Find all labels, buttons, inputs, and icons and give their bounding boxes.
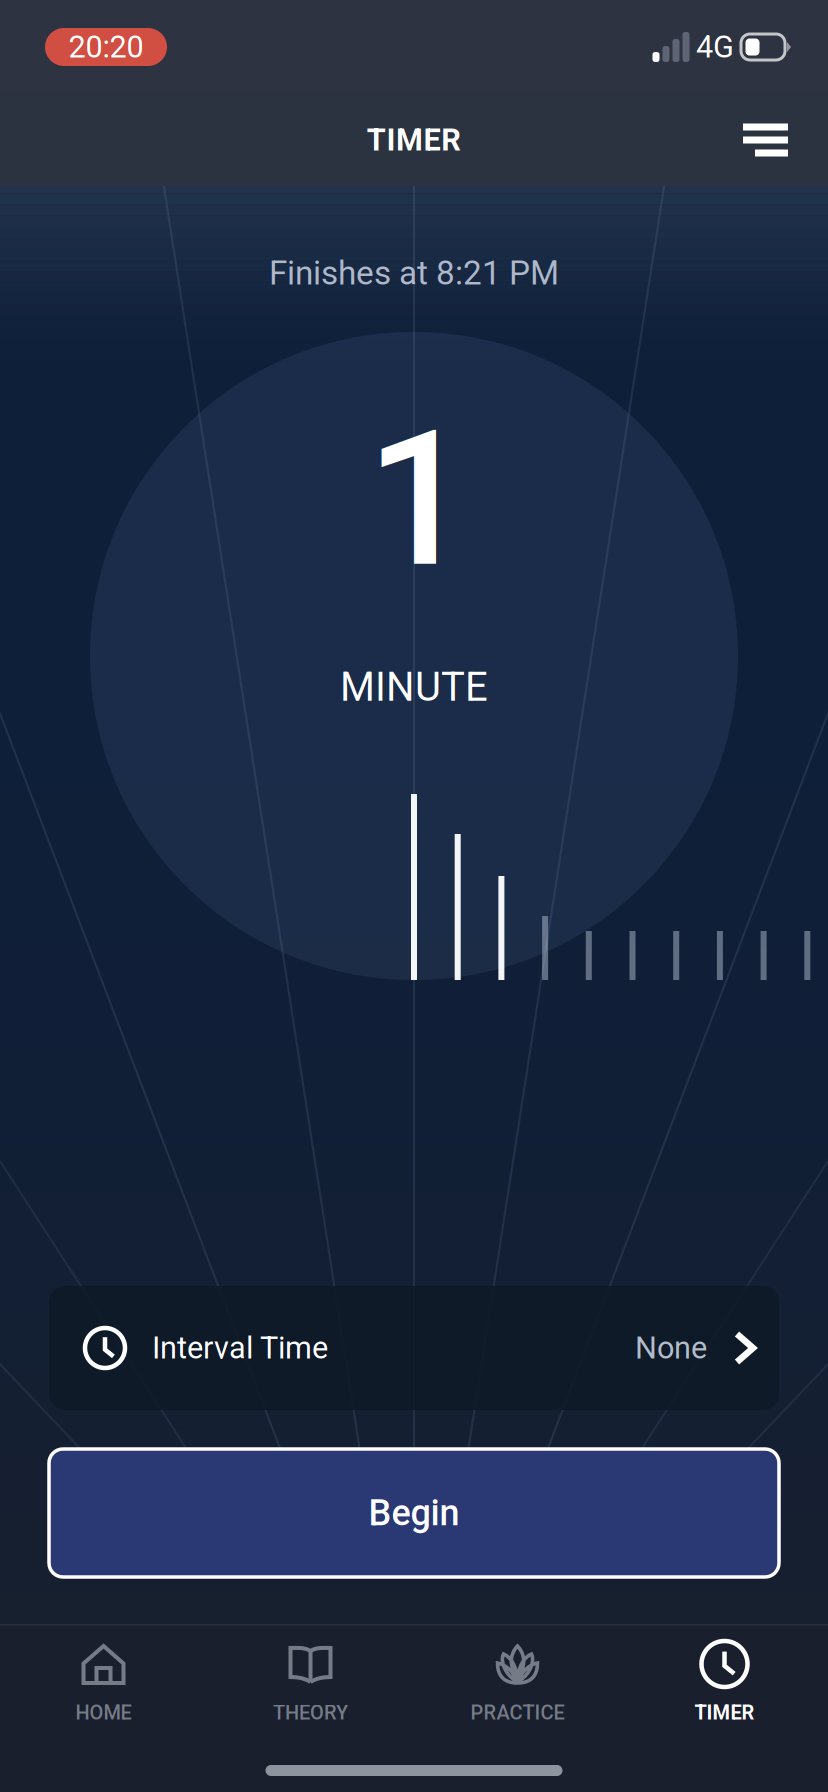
button[interactable]: TIMER	[621, 1624, 828, 1734]
staticText: Finishes at 8:21 PM	[269, 253, 559, 293]
button[interactable]: Begin	[49, 1449, 779, 1577]
button[interactable]: THEORY	[207, 1624, 414, 1734]
staticText: None	[635, 1330, 707, 1366]
staticText: TIMER	[367, 122, 461, 158]
button[interactable]: Menu	[721, 95, 810, 184]
button[interactable]: Interval Time	[49, 1286, 779, 1410]
staticText: Interval Time	[152, 1330, 328, 1366]
staticText: MINUTE	[340, 664, 488, 710]
staticText: Begin	[368, 1492, 459, 1534]
staticText: HOME	[75, 1701, 131, 1724]
staticText: 4G	[696, 29, 734, 65]
button[interactable]: PRACTICE	[414, 1624, 621, 1734]
staticText: PRACTICE	[470, 1701, 564, 1724]
staticText: TIMER	[694, 1701, 754, 1724]
staticText: THEORY	[273, 1701, 348, 1724]
staticText: 1	[366, 391, 472, 609]
staticText: 20:20	[68, 29, 143, 65]
button[interactable]: HOME	[0, 1624, 207, 1734]
